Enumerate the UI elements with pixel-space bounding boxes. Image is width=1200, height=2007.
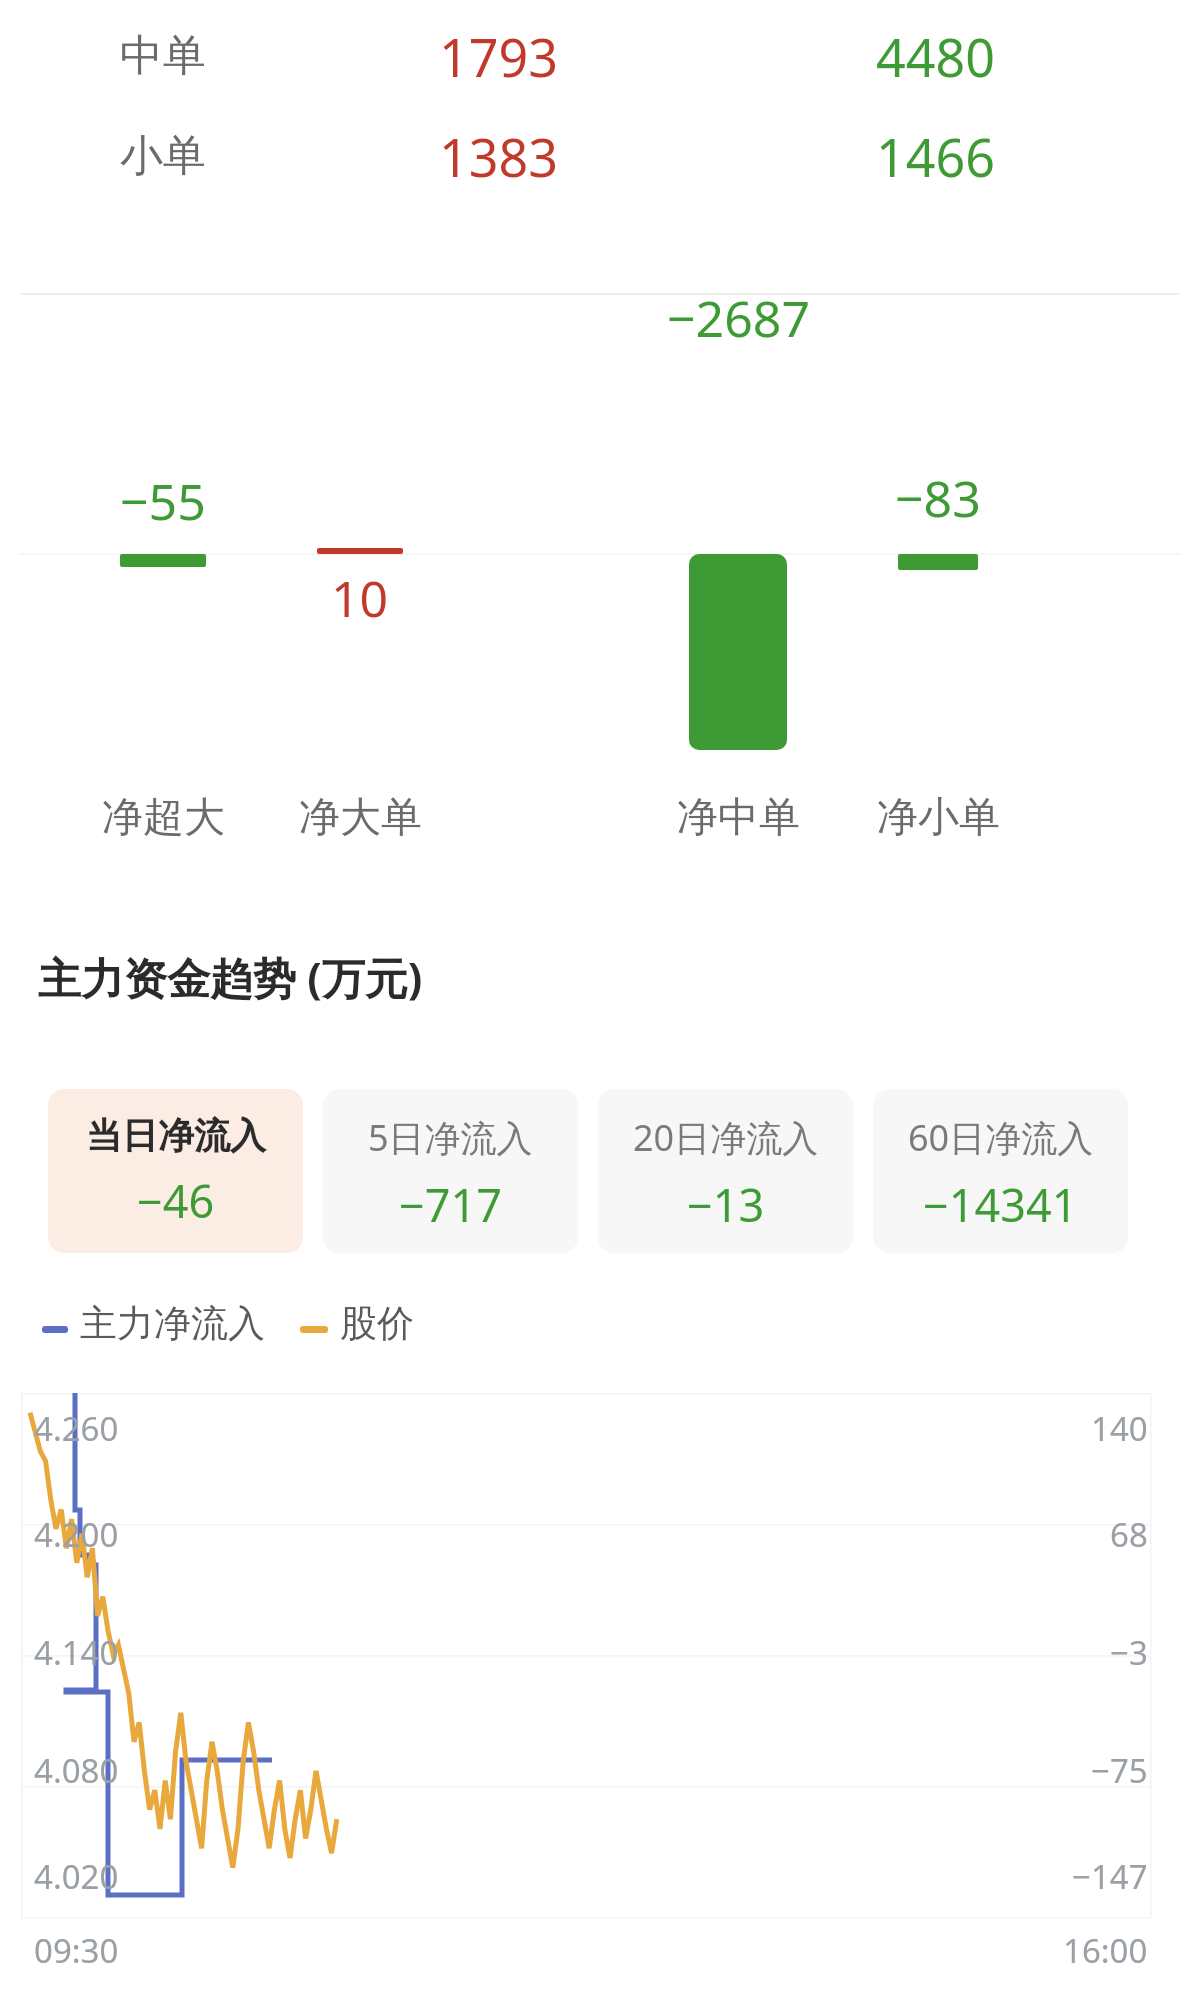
staticText: 5日净流入 <box>368 1113 533 1162</box>
staticText: 4.260 <box>34 1406 119 1451</box>
button[interactable]: 中单 <box>0 0 1200 112</box>
button[interactable]: 当日净流入 <box>48 1089 303 1253</box>
button[interactable]: 20日净流入 <box>598 1089 853 1253</box>
staticText: −14341 <box>923 1174 1078 1235</box>
staticText: −46 <box>137 1170 215 1231</box>
staticText: −147 <box>1072 1854 1148 1899</box>
staticText: 20日净流入 <box>633 1113 819 1162</box>
staticText: 1466 <box>876 121 995 192</box>
staticText: 净超大 <box>102 792 225 844</box>
staticText: 净小单 <box>877 792 1000 844</box>
staticText: 1383 <box>439 121 558 192</box>
staticText: 主力净流入 <box>80 1300 265 1347</box>
staticText: 净中单 <box>677 792 800 844</box>
staticText: 当日净流入 <box>86 1113 266 1158</box>
staticText: −3 <box>1110 1630 1148 1675</box>
staticText: 140 <box>1091 1406 1148 1451</box>
staticText: −717 <box>399 1174 502 1235</box>
staticText: 1793 <box>439 21 558 92</box>
staticText: −55 <box>120 467 206 535</box>
staticText: 4.020 <box>34 1854 119 1899</box>
staticText: 60日净流入 <box>908 1113 1094 1162</box>
staticText: 4.080 <box>34 1748 119 1793</box>
button[interactable]: 5日净流入 <box>323 1089 578 1253</box>
button[interactable]: −83 <box>798 464 1078 532</box>
button[interactable]: 小单 <box>0 112 1200 200</box>
button[interactable]: −55 <box>23 467 303 535</box>
staticText: 4.200 <box>34 1512 119 1557</box>
staticText: 中单 <box>120 29 206 83</box>
staticText: −13 <box>687 1174 765 1235</box>
staticText: −75 <box>1091 1748 1148 1793</box>
button[interactable]: 10 <box>220 564 500 632</box>
button[interactable]: −2687 <box>598 284 878 352</box>
staticText: 小单 <box>120 129 206 183</box>
staticText: 股价 <box>340 1300 414 1347</box>
staticText: 16:00 <box>1063 1928 1148 1973</box>
staticText: 09:30 <box>34 1928 119 1973</box>
staticText: −83 <box>895 464 981 532</box>
button[interactable]: 60日净流入 <box>873 1089 1128 1253</box>
staticText: 主力资金趋势 (万元) <box>38 948 423 1007</box>
staticText: 净大单 <box>299 792 422 844</box>
staticText: 4480 <box>876 21 995 92</box>
staticText: −2687 <box>667 284 810 352</box>
staticText: 68 <box>1110 1512 1148 1557</box>
staticText: 4.140 <box>34 1630 119 1675</box>
staticText: 10 <box>331 564 389 632</box>
